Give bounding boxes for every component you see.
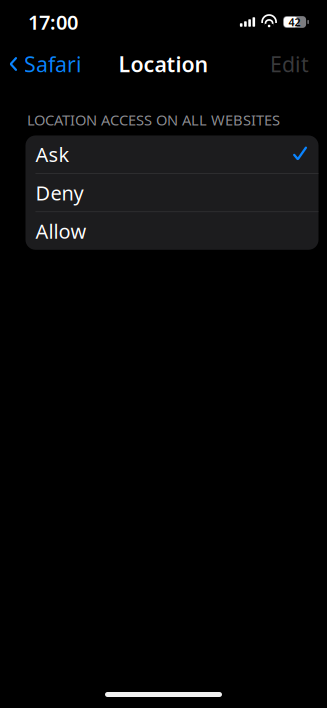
staticText: 42 [289,15,301,29]
button[interactable]: Allow [25,212,318,250]
staticText: Deny [35,179,83,206]
staticText: 17:00 [28,9,78,35]
staticText: Location [118,50,208,78]
button[interactable]: Deny [25,174,318,211]
staticText: Allow [35,218,86,244]
button[interactable]: Ask [25,135,318,173]
staticText: LOCATION ACCESS ON ALL WEBSITES [27,110,280,129]
staticText: Edit [270,50,309,78]
staticText: Safari [24,50,82,78]
staticText: Ask [35,141,69,168]
button[interactable]: Safari [0,44,90,84]
button[interactable]: Edit [260,44,319,84]
